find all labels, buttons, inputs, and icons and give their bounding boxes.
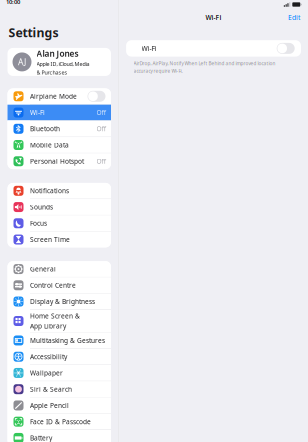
button[interactable]: Mobile Data bbox=[7, 137, 111, 153]
button[interactable]: Display & Brightness bbox=[7, 294, 111, 309]
button[interactable]: Edit bbox=[288, 13, 300, 22]
staticText: Face ID & Passcode bbox=[30, 417, 91, 426]
staticText: Off bbox=[96, 124, 105, 133]
staticText: Display & Brightness bbox=[30, 297, 95, 306]
staticText: Off bbox=[96, 157, 105, 166]
staticText: AJ bbox=[18, 56, 26, 68]
staticText: Siri & Search bbox=[30, 385, 72, 394]
staticText: 10:00 bbox=[6, 0, 20, 6]
staticText: Personal Hotspot bbox=[30, 157, 84, 166]
button[interactable]: AJ bbox=[0, 48, 118, 76]
staticText: Wi-Fi bbox=[142, 44, 157, 53]
button[interactable]: Control Centre bbox=[7, 277, 111, 293]
button[interactable]: Accessibility bbox=[7, 349, 111, 364]
button[interactable]: Wi-Fi bbox=[7, 105, 111, 120]
button[interactable]: Screen Time bbox=[7, 232, 111, 247]
staticText: Notifications bbox=[30, 186, 69, 195]
staticText: Bluetooth bbox=[30, 124, 60, 133]
staticText: Wi-Fi bbox=[30, 108, 45, 117]
button[interactable]: Personal Hotspot bbox=[7, 153, 111, 169]
staticText: Battery bbox=[30, 433, 52, 442]
staticText: Mobile Data bbox=[30, 141, 69, 149]
staticText: App Library bbox=[30, 322, 66, 330]
button[interactable]: Apple Pencil bbox=[7, 398, 111, 413]
staticText: Wi-Fi bbox=[205, 13, 221, 22]
staticText: Focus bbox=[30, 219, 47, 228]
staticText: Settings bbox=[8, 24, 58, 41]
staticText: Off bbox=[96, 108, 105, 117]
button[interactable]: Face ID & Passcode bbox=[7, 414, 111, 429]
staticText: accuracy require Wi-Fi. bbox=[134, 68, 183, 74]
button[interactable]: Battery bbox=[7, 430, 111, 442]
staticText: Control Centre bbox=[30, 281, 76, 290]
button[interactable]: Multitasking & Gestures bbox=[7, 333, 111, 348]
button[interactable]: Notifications bbox=[7, 183, 111, 199]
button[interactable]: Airplane Mode bbox=[7, 88, 111, 104]
staticText: Apple Pencil bbox=[30, 401, 69, 410]
staticText: Apple ID, iCloud, Media bbox=[36, 60, 89, 68]
button[interactable]: Sounds bbox=[7, 199, 111, 215]
button[interactable]: Wi-Fi bbox=[119, 40, 308, 57]
staticText: Edit bbox=[288, 13, 300, 22]
button[interactable]: Siri & Search bbox=[7, 381, 111, 397]
button[interactable]: General bbox=[7, 261, 111, 277]
button[interactable]: Bluetooth bbox=[7, 121, 111, 137]
staticText: General bbox=[30, 265, 56, 273]
staticText: Accessibility bbox=[30, 352, 67, 361]
staticText: Airplane Mode bbox=[30, 92, 77, 101]
staticText: Alan Jones bbox=[36, 48, 78, 59]
staticText: & Purchases bbox=[36, 69, 67, 76]
button[interactable]: Home Screen & bbox=[7, 310, 111, 332]
staticText: AirDrop, AirPlay, Notify When Left Behin… bbox=[134, 60, 276, 67]
staticText: Wallpaper bbox=[30, 368, 63, 377]
staticText: Home Screen & bbox=[30, 311, 80, 320]
staticText: Sounds bbox=[30, 203, 53, 211]
staticText: Multitasking & Gestures bbox=[30, 336, 105, 345]
button[interactable]: Wallpaper bbox=[7, 365, 111, 381]
button[interactable]: Focus bbox=[7, 215, 111, 231]
staticText: Screen Time bbox=[30, 235, 70, 244]
